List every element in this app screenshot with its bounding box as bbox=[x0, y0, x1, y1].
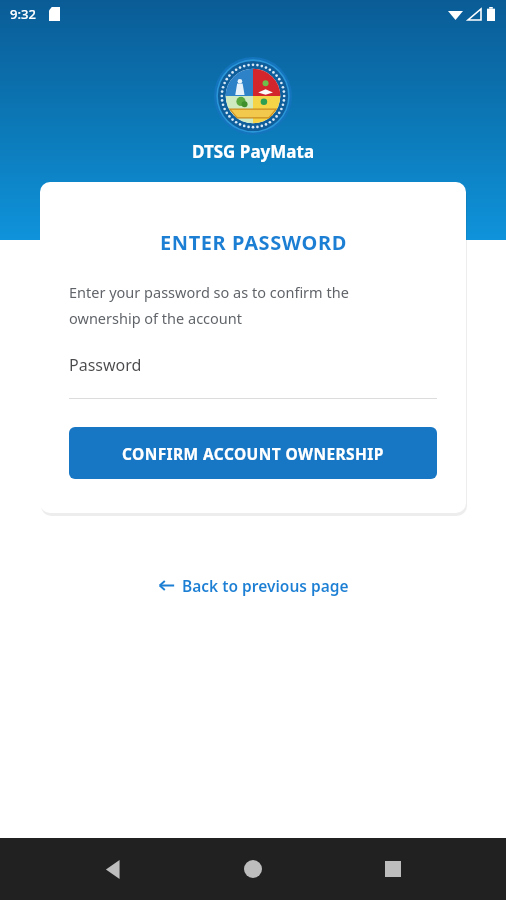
staticText: Back to previous page bbox=[182, 575, 349, 596]
staticText: 9:32 bbox=[10, 5, 36, 23]
staticText: CONFIRM ACCOUNT OWNERSHIP bbox=[122, 443, 384, 464]
button[interactable]: Home bbox=[226, 842, 280, 896]
staticText: ENTER PASSWORD bbox=[160, 229, 347, 256]
staticText: ownership of the account bbox=[69, 308, 242, 328]
staticText: Enter your password so as to confirm the bbox=[69, 282, 349, 302]
button[interactable]: Password bbox=[69, 354, 437, 399]
staticText: Password bbox=[69, 354, 142, 376]
button[interactable]: Recent apps bbox=[366, 842, 420, 896]
button[interactable]: CONFIRM ACCOUNT OWNERSHIP bbox=[69, 427, 437, 479]
button[interactable]: Back to previous page bbox=[150, 570, 357, 601]
button[interactable]: Back bbox=[86, 842, 140, 896]
staticText: DTSG PayMata bbox=[192, 140, 315, 163]
